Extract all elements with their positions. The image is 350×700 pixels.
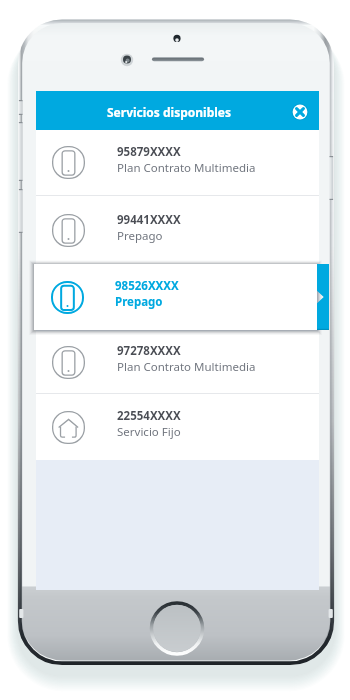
- staticText: 22554XXXX: [117, 408, 181, 424]
- staticText: Prepago: [117, 228, 163, 244]
- staticText: 95879XXXX: [117, 144, 181, 160]
- staticText: Prepago: [115, 294, 163, 310]
- button[interactable]: 99441XXXX: [36, 196, 319, 265]
- staticText: Servicios disponibles: [107, 104, 232, 120]
- button[interactable]: 97278XXXX: [36, 331, 319, 393]
- button[interactable]: 98526XXXX: [34, 264, 317, 330]
- staticText: Plan Contrato Multimedia: [117, 359, 256, 375]
- staticText: 98526XXXX: [115, 278, 179, 294]
- button[interactable]: 22554XXXX: [36, 394, 319, 460]
- button[interactable]: Cerrar: [287, 99, 313, 125]
- button[interactable]: 95879XXXX: [36, 130, 319, 195]
- staticText: 97278XXXX: [117, 343, 181, 359]
- staticText: Servicio Fijo: [117, 424, 181, 440]
- staticText: 99441XXXX: [117, 212, 181, 228]
- button[interactable]: Servicio seleccionado: [317, 264, 329, 330]
- staticText: Plan Contrato Multimedia: [117, 160, 256, 176]
